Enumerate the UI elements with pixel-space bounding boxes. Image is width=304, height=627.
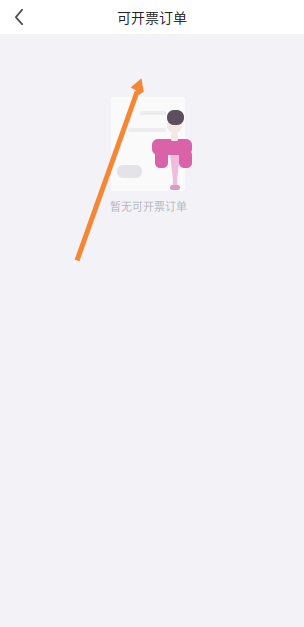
- staticText: 可开票订单: [117, 7, 187, 27]
- button[interactable]: Back: [0, 0, 38, 34]
- staticText: 暂无可开票订单: [110, 198, 187, 214]
